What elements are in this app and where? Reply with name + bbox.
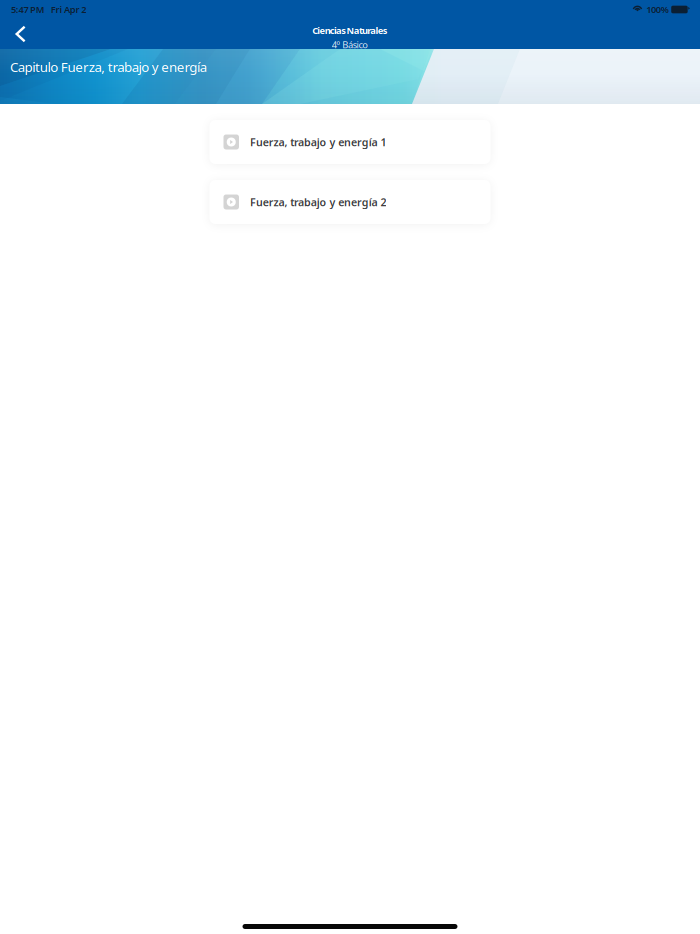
staticText: 5:47 PM [11,3,45,16]
staticText: Capitulo Fuerza, trabajo y energía [10,58,207,76]
button[interactable]: Fuerza, trabajo y energía 1 [209,120,490,164]
staticText: Ciencias Naturales [312,24,388,36]
staticText: 100% [646,3,669,16]
staticText: Fri Apr 2 [51,3,86,16]
staticText: Fuerza, trabajo y energía 2 [250,195,386,209]
button[interactable]: Back [0,19,41,49]
button[interactable]: Fuerza, trabajo y energía 2 [209,180,490,224]
staticText: Fuerza, trabajo y energía 1 [250,135,386,149]
staticText: 4º Básico [332,38,368,51]
